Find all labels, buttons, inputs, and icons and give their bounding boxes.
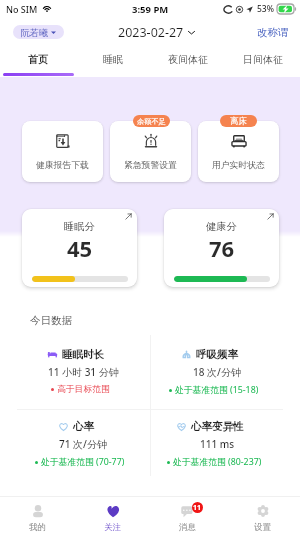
staticText: 76 [209,233,235,263]
staticText: 健康分 [206,220,237,233]
button[interactable]: 用户实时状态 [198,121,279,182]
staticText: 我的 [29,522,46,533]
button[interactable]: 夜间体征 [150,47,225,71]
staticText: 夜间体征 [168,53,208,66]
staticText: 11 小时 31 分钟 [48,365,119,379]
staticText: 健康报告下载 [36,160,89,171]
button[interactable]: 设置 [225,497,300,533]
staticText: 45 [67,233,93,263]
button[interactable]: 健康分 [164,209,279,287]
staticText: 阮若曦 [21,27,48,38]
staticText: 余额不足 [137,117,166,126]
button[interactable]: 关注 [75,497,150,533]
staticText: 111 ms [200,437,235,451]
button[interactable]: 睡眠时长 [16,337,150,409]
staticText: 心率 [73,420,94,433]
staticText: 71 次/分钟 [59,437,107,451]
staticText: 心率变异性 [191,420,244,433]
staticText: 消息 [179,522,196,533]
staticText: 睡眠 [103,53,123,66]
staticText: 2023-02-27 [118,24,184,40]
staticText: 18 次/分钟 [193,365,241,379]
staticText: 离床 [230,116,247,127]
staticText: 11 [193,503,202,513]
staticText: 首页 [28,53,48,66]
staticText: 睡眠时长 [62,348,104,361]
button[interactable]: 呼吸频率 [150,337,284,409]
staticText: 呼吸频率 [196,348,238,361]
button[interactable]: Open details [262,209,278,224]
button[interactable]: 阮若曦 [13,25,64,39]
staticText: 紧急预警设置 [124,160,177,171]
button[interactable]: 改称谓 [257,24,289,40]
button[interactable]: 首页 [0,47,75,71]
staticText: 改称谓 [257,26,289,39]
staticText: 3:59 PM [132,3,169,16]
staticText: 高于目标范围 [57,384,110,395]
staticText: 53% [257,3,274,15]
staticText: 睡眠分 [64,220,95,233]
staticText: 用户实时状态 [212,160,265,171]
button[interactable]: 11 [150,497,225,533]
staticText: 关注 [104,522,121,533]
button[interactable]: 2023-02-27 [118,24,196,40]
button[interactable]: 心率 [16,409,150,481]
button[interactable]: 紧急预警设置 [110,121,191,182]
staticText: 日间体征 [243,53,283,66]
button[interactable]: 心率变异性 [150,409,284,481]
staticText: No SIM [6,3,38,15]
staticText: 处于基准范围 (70-77) [41,456,125,468]
staticText: 今日数据 [30,314,72,327]
button[interactable]: Open details [120,209,136,224]
button[interactable]: 健康报告下载 [22,121,103,182]
button[interactable]: 我的 [0,497,75,533]
staticText: 设置 [254,522,271,533]
button[interactable]: 睡眠 [75,47,150,71]
staticText: 处于基准范围 (15-18) [175,384,259,396]
staticText: 处于基准范围 (80-237) [173,456,262,468]
button[interactable]: 睡眠分 [22,209,137,287]
button[interactable]: 日间体征 [225,47,300,71]
